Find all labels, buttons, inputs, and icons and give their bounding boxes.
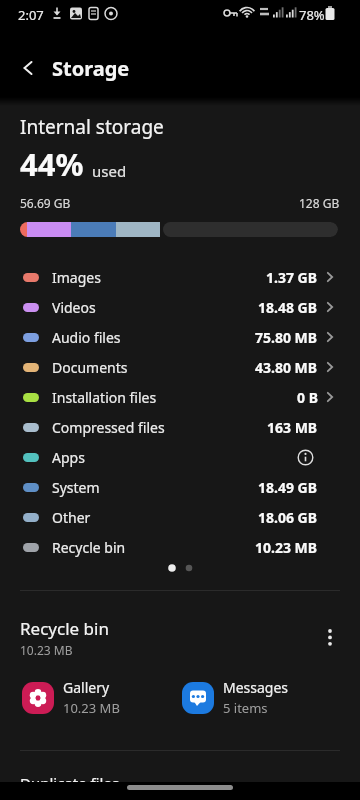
staticText: Duplicate files — [20, 773, 120, 793]
staticText: 78% — [299, 6, 325, 24]
staticText: 56.69 GB — [20, 195, 71, 211]
staticText: 18.49 GB — [258, 478, 318, 497]
staticText: 2:07 — [18, 6, 44, 24]
staticText: 18.48 GB — [258, 298, 318, 317]
button[interactable]: Audio files — [0, 322, 360, 352]
staticText: 10.23 MB — [255, 538, 318, 557]
staticText: Installation files — [52, 388, 157, 407]
button[interactable]: Documents — [0, 352, 360, 382]
staticText: Internal storage — [20, 114, 164, 140]
staticText: System — [52, 478, 100, 497]
button[interactable]: Apps — [0, 442, 360, 472]
staticText: Messages — [223, 678, 289, 697]
staticText: Other — [52, 508, 91, 527]
staticText: Audio files — [52, 328, 121, 347]
staticText: 10.23 MB — [20, 642, 73, 658]
staticText: 44% — [20, 143, 84, 185]
button[interactable]: Compressed files — [0, 412, 360, 442]
staticText: 5 items — [223, 699, 268, 717]
staticText: Documents — [52, 358, 128, 377]
button[interactable]: Other — [0, 502, 360, 532]
button[interactable] — [14, 54, 42, 82]
button[interactable] — [318, 627, 342, 657]
button[interactable]: Videos — [0, 292, 360, 322]
button[interactable]: Recycle bin — [0, 532, 360, 562]
staticText: Recycle bin — [52, 538, 126, 557]
staticText: 0 B — [297, 388, 318, 407]
staticText: Recycle bin — [20, 617, 109, 640]
button[interactable]: Messages — [182, 678, 289, 717]
button[interactable]: Installation files — [0, 382, 360, 412]
button[interactable]: Images — [0, 262, 360, 292]
staticText: Storage — [52, 55, 130, 82]
staticText: 10.23 MB — [63, 699, 120, 717]
staticText: Videos — [52, 298, 96, 317]
button[interactable]: Gallery — [22, 678, 120, 717]
staticText: Images — [52, 268, 101, 287]
staticText: Compressed files — [52, 418, 165, 437]
staticText: 43.80 MB — [255, 358, 318, 377]
staticText: 163 MB — [267, 418, 318, 437]
staticText: Apps — [52, 448, 85, 467]
button[interactable]: System — [0, 472, 360, 502]
staticText: Gallery — [63, 678, 110, 697]
staticText: used — [92, 161, 127, 181]
staticText: 75.80 MB — [255, 328, 318, 347]
staticText: 128 GB — [299, 195, 340, 211]
staticText: 18.06 GB — [258, 508, 318, 527]
staticText: 1.37 GB — [266, 268, 318, 287]
